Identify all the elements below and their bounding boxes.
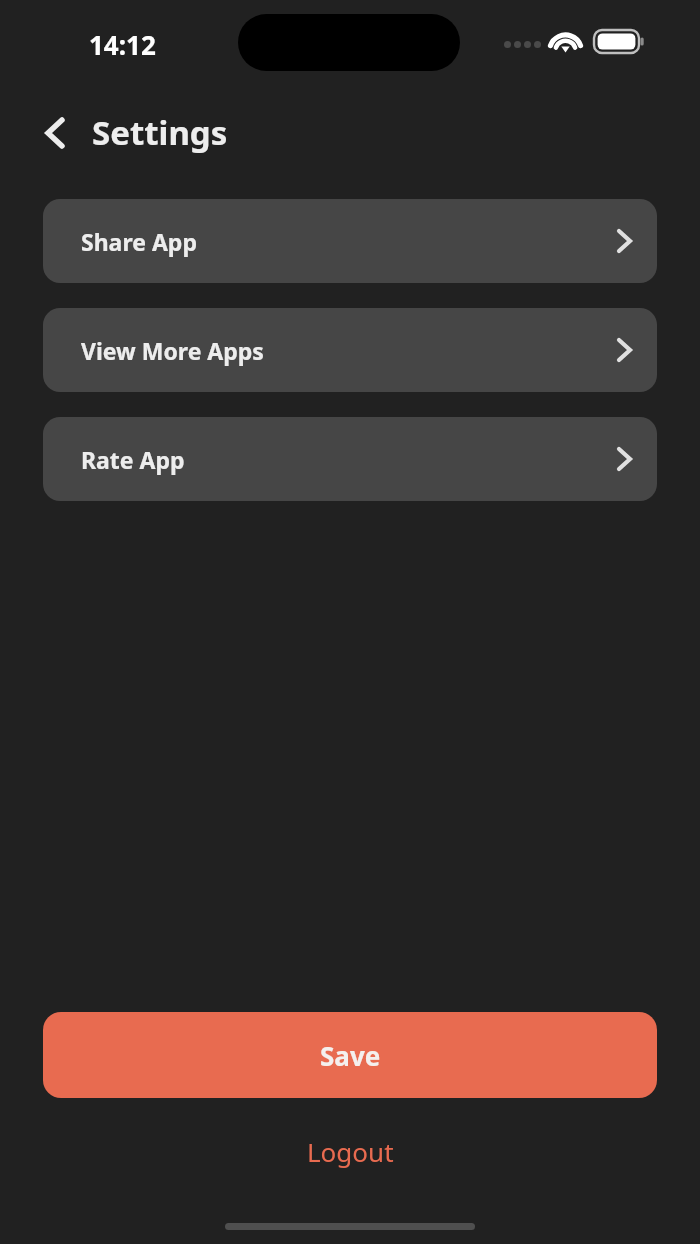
button[interactable]: Share App bbox=[43, 199, 657, 283]
button[interactable]: Rate App bbox=[43, 417, 657, 501]
button[interactable]: View More Apps bbox=[43, 308, 657, 392]
staticText: View More Apps bbox=[81, 335, 264, 366]
staticText: Settings bbox=[92, 110, 228, 155]
staticText: Logout bbox=[307, 1134, 394, 1169]
button[interactable]: Save bbox=[43, 1012, 657, 1098]
staticText: Save bbox=[320, 1038, 381, 1073]
staticText: 14:12 bbox=[89, 27, 156, 62]
button[interactable]: Logout bbox=[0, 1124, 700, 1178]
staticText: Rate App bbox=[81, 444, 185, 475]
button[interactable]: Back bbox=[30, 108, 80, 158]
staticText: Share App bbox=[81, 226, 197, 257]
